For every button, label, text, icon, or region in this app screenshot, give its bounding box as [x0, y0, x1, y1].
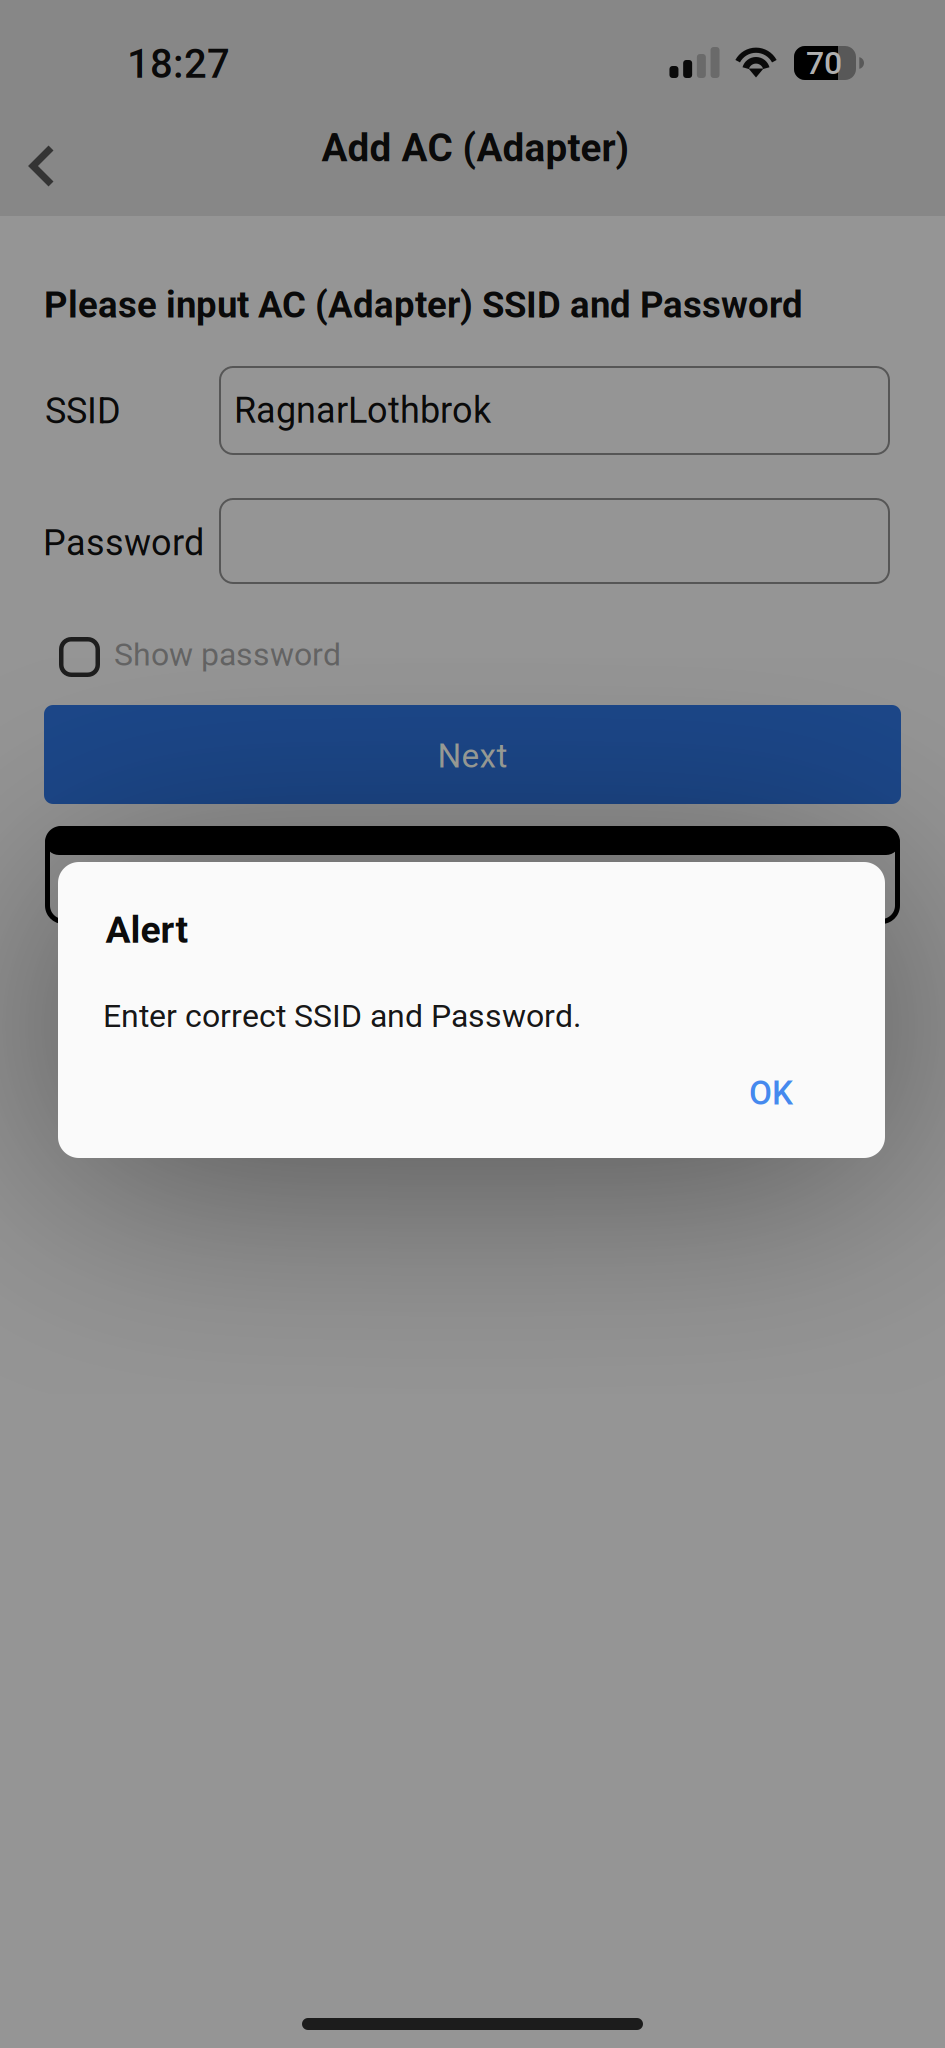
- staticText: 18:27: [127, 41, 230, 87]
- staticText: Enter correct SSID and Password.: [103, 997, 581, 1035]
- button[interactable]: Next: [44, 705, 901, 804]
- button[interactable]: Show password: [59, 617, 399, 697]
- staticText: Add AC (Adapter): [321, 125, 629, 171]
- staticText: Alert: [105, 908, 188, 952]
- button[interactable]: OK: [712, 1055, 830, 1131]
- staticText: RagnarLothbrok: [234, 389, 491, 432]
- staticText: Show password: [114, 636, 341, 673]
- staticText: Password: [43, 522, 204, 564]
- staticText: OK: [749, 1073, 793, 1113]
- staticText: 70: [806, 44, 842, 82]
- button[interactable]: Back: [4, 126, 84, 206]
- staticText: SSID: [45, 390, 121, 432]
- staticText: Please input AC (Adapter) SSID and Passw…: [44, 284, 803, 326]
- staticText: Next: [437, 736, 507, 776]
